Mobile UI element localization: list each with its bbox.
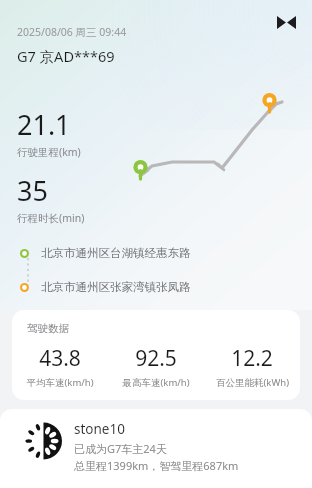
staticText: 2025/08/06 周三 09:44 (17, 25, 127, 39)
staticText: G7 京AD***69 (17, 46, 115, 66)
staticText: 92.5 (135, 344, 177, 373)
staticText: 已成为G7车主24天 (74, 441, 167, 456)
button[interactable]: 北京市通州区张家湾镇张凤路 (0, 278, 312, 296)
button[interactable]: 北京市通州区台湖镇经惠东路 (0, 244, 312, 262)
button[interactable]: 驾驶数据 (12, 310, 300, 400)
staticText: 43.8 (39, 344, 81, 373)
staticText: 行驶里程(km) (17, 145, 81, 159)
staticText: 北京市通州区张家湾镇张凤路 (41, 280, 191, 294)
staticText: 21.1 (17, 106, 71, 143)
staticText: 驾驶数据 (27, 322, 69, 335)
button[interactable]: Close (272, 8, 300, 36)
staticText: 总里程1399km，智驾里程687km (74, 458, 239, 473)
staticText: 百公里能耗(kWh) (216, 376, 289, 389)
staticText: 平均车速(km/h) (26, 376, 94, 389)
staticText: 12.2 (231, 344, 273, 373)
staticText: 北京市通州区台湖镇经惠东路 (41, 246, 191, 260)
staticText: stone10 (74, 420, 125, 438)
staticText: 最高车速(km/h) (122, 376, 190, 389)
staticText: 35 (17, 172, 48, 209)
button[interactable]: stone10 (0, 409, 312, 488)
staticText: 行程时长(min) (17, 211, 85, 225)
